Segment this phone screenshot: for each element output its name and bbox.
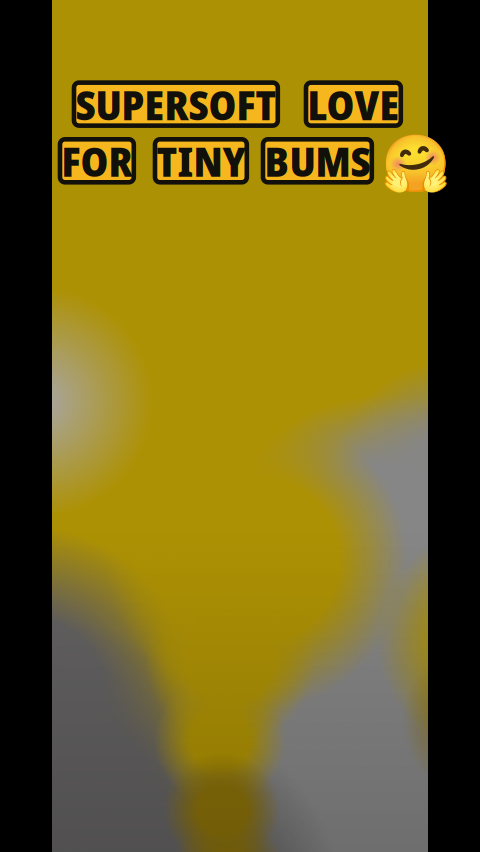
staticText: FOR bbox=[61, 133, 132, 189]
staticText: SUPERSOFT bbox=[75, 76, 276, 132]
staticText: LOVE bbox=[307, 76, 399, 132]
staticText: TINY bbox=[156, 133, 245, 189]
staticText: BUMS bbox=[264, 133, 370, 189]
staticText: 🤗 bbox=[381, 132, 451, 196]
